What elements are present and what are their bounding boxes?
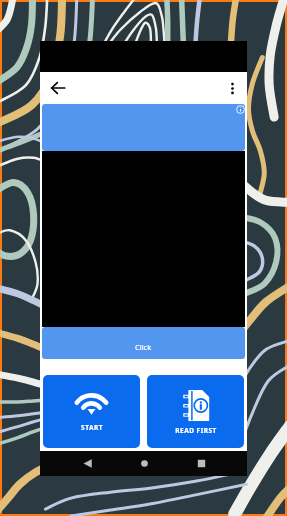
button[interactable]: Recents [188, 451, 214, 476]
button[interactable]: START [43, 375, 140, 448]
staticText: Click [135, 342, 152, 352]
button[interactable]: Click [42, 327, 245, 359]
button[interactable]: More options [221, 77, 243, 99]
staticText: START [81, 423, 103, 432]
button[interactable]: Back [46, 76, 70, 100]
staticText: READ FIRST [175, 426, 217, 435]
button[interactable]: Back [74, 451, 100, 476]
button[interactable]: Home [131, 451, 157, 476]
button[interactable] [42, 104, 245, 151]
button[interactable]: READ FIRST [147, 375, 244, 448]
